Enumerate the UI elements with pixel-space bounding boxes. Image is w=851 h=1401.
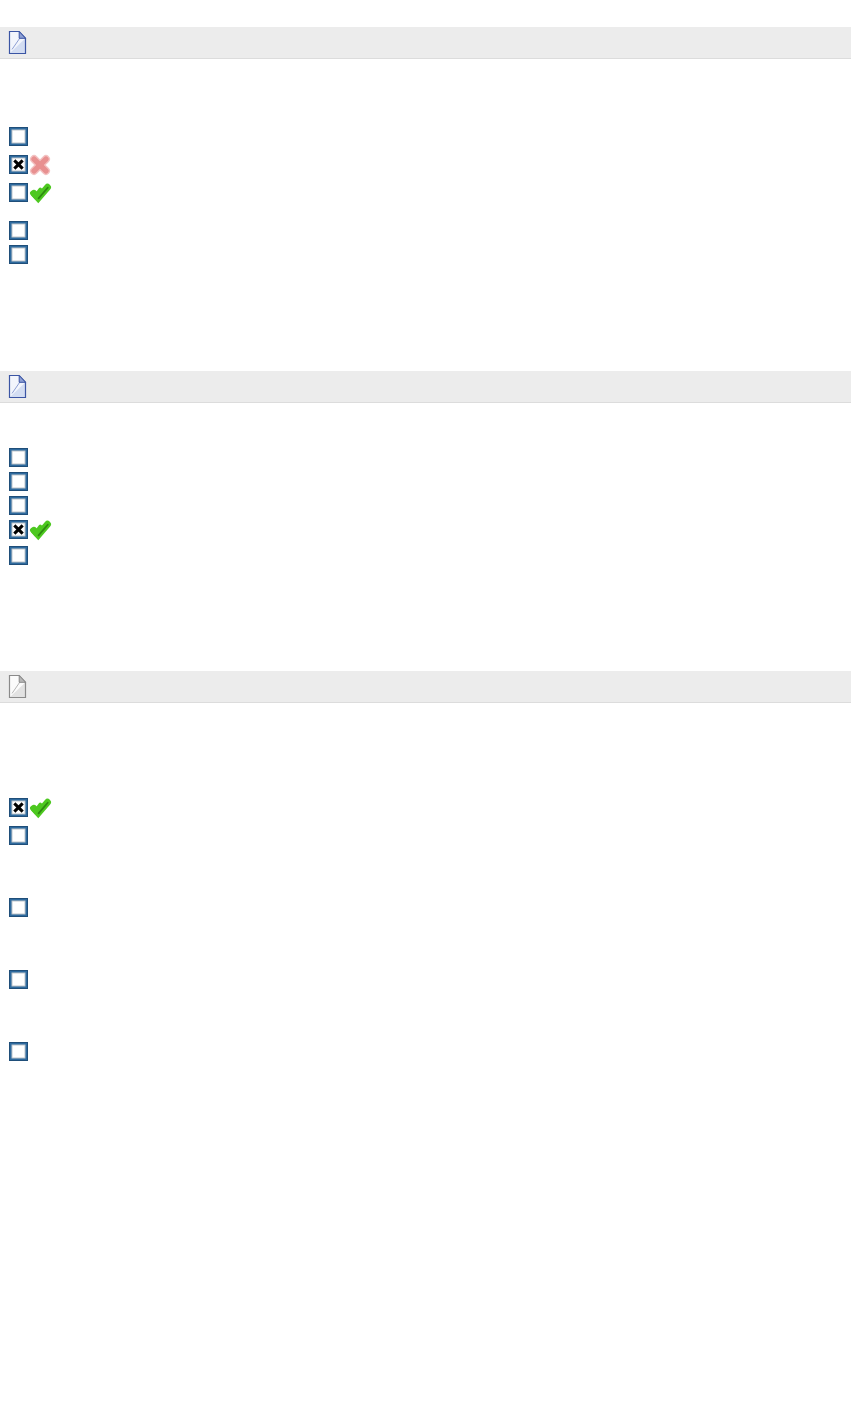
button[interactable]: Unchecked [9,448,28,467]
other: Pass [31,521,49,539]
button[interactable]: Unchecked [9,826,28,845]
button[interactable]: Unchecked [9,245,28,264]
button[interactable]: Checked [9,798,28,817]
button[interactable]: Document section 3 [0,671,851,703]
button[interactable]: Unchecked [9,496,28,515]
other: Fail [31,156,49,174]
button[interactable]: Unchecked [9,1042,28,1061]
button[interactable]: Unchecked [9,183,28,202]
other: Pass [31,799,49,817]
button[interactable]: Unchecked [9,127,28,146]
other: Pass [31,184,49,202]
button[interactable]: Unchecked [9,546,28,565]
button[interactable]: Unchecked [9,970,28,989]
button[interactable]: Unchecked [9,898,28,917]
button[interactable]: Unchecked [9,472,28,491]
button[interactable]: Checked [9,520,28,539]
button[interactable]: Document section 2 [0,371,851,403]
button[interactable]: Checked [9,155,28,174]
button[interactable]: Unchecked [9,221,28,240]
button[interactable]: Document section 1 [0,27,851,59]
